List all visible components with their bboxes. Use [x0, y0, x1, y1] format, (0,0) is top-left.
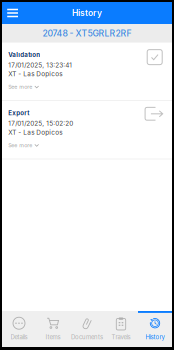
button[interactable]: History: [138, 311, 172, 347]
staticText: 17/01/2025, 15:02:20: [8, 120, 73, 127]
button[interactable]: Validation: [2, 43, 172, 100]
staticText: History: [145, 333, 164, 341]
button[interactable]: Documents: [70, 311, 104, 347]
staticText: Travels: [111, 333, 130, 341]
staticText: XT - Las Dopicos: [8, 129, 62, 136]
button[interactable]: Items: [36, 311, 70, 347]
staticText: History: [72, 8, 102, 18]
staticText: Items: [45, 333, 60, 341]
staticText: 17/01/2025, 13:23:41: [8, 61, 72, 69]
staticText: XT - Las Dopicos: [8, 70, 62, 78]
staticText: Validation: [8, 51, 40, 58]
staticText: See more: [8, 142, 32, 149]
button[interactable]: Travels: [104, 311, 138, 347]
staticText: See more: [8, 84, 32, 90]
staticText: Documents: [71, 333, 103, 341]
staticText: Export: [8, 109, 29, 117]
staticText: 20748 - XT5GRLR2RF: [42, 28, 131, 39]
button[interactable]: Details: [2, 311, 36, 347]
button[interactable]: Export: [2, 101, 172, 159]
staticText: Details: [10, 333, 27, 341]
button[interactable]: Menu: [2, 3, 22, 23]
